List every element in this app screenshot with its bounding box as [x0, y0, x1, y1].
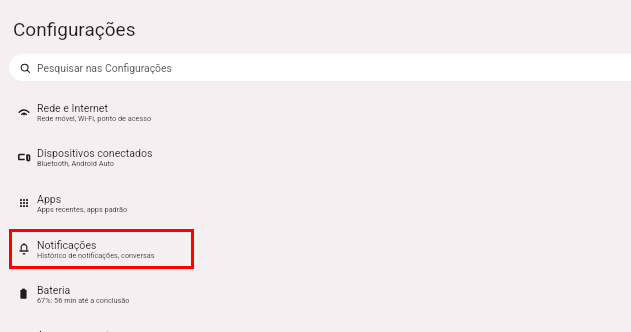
staticText: 67%: 56 min até a conclusão	[37, 296, 130, 305]
staticText: Apps recentes, apps padrão	[37, 205, 128, 214]
other: Rede e Internet	[17, 105, 31, 119]
staticText: Rede móvel, Wi-Fi, ponto de acesso	[37, 114, 152, 123]
other: Dispositivos conectados	[17, 150, 31, 164]
other: Notificações	[16, 241, 32, 257]
button[interactable]: Dispositivos conectados	[0, 134, 631, 180]
other: Pesquisar	[20, 63, 31, 74]
staticText: Notificações	[37, 239, 97, 251]
button[interactable]: Pesquisar	[9, 54, 631, 81]
button[interactable]: Apps	[0, 180, 631, 226]
other: Apps	[17, 196, 31, 210]
button[interactable]: Rede e Internet	[0, 89, 631, 135]
button[interactable]: Bateria	[0, 271, 631, 317]
staticText: Bluetooth, Android Auto	[37, 159, 114, 168]
staticText: Histórico de notificações, conversas	[37, 251, 155, 260]
other: Bateria	[17, 287, 31, 301]
staticText: Rede e Internet	[37, 102, 108, 114]
staticText: Pesquisar nas Configurações	[37, 62, 172, 74]
staticText: Configurações	[13, 18, 136, 40]
staticText: Apps	[37, 193, 62, 205]
staticText: Bateria	[37, 284, 71, 296]
staticText: Armazenamento	[37, 329, 116, 332]
staticText: Dispositivos conectados	[37, 147, 153, 159]
button[interactable]: Notificações	[0, 226, 631, 272]
